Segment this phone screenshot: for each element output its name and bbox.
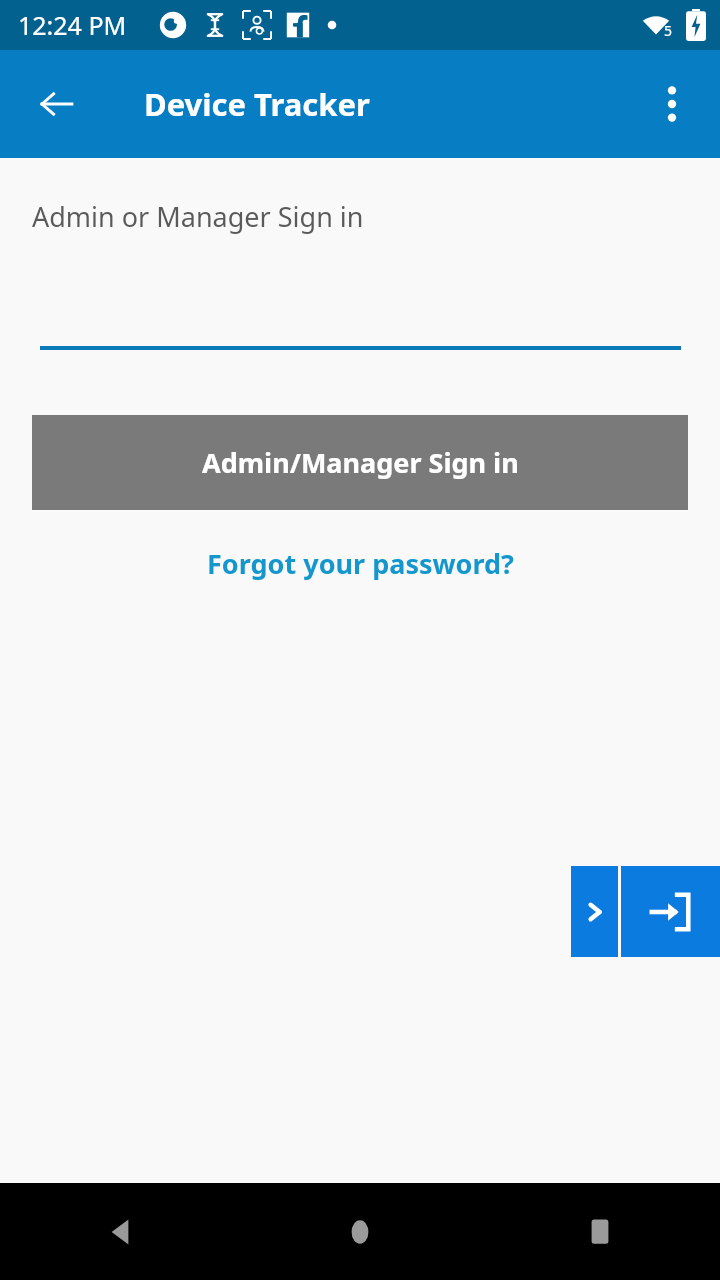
- button[interactable]: Admin/Manager Sign in: [32, 415, 688, 510]
- staticText: Forgot your password?: [207, 545, 514, 582]
- button[interactable]: Back: [0, 1183, 240, 1280]
- button[interactable]: More options: [644, 76, 700, 132]
- staticText: Admin or Manager Sign in: [32, 198, 364, 235]
- button[interactable]: Home: [240, 1183, 480, 1280]
- button[interactable]: Username field: [40, 278, 681, 350]
- button[interactable]: Password field: [40, 370, 681, 444]
- staticText: Admin/Manager Sign in: [202, 444, 519, 481]
- button[interactable]: Expand: [571, 866, 618, 957]
- button[interactable]: Sign in shortcut: [621, 866, 720, 957]
- staticText: 5: [664, 21, 673, 40]
- button[interactable]: Back: [25, 72, 89, 136]
- staticText: Device Tracker: [144, 83, 370, 125]
- staticText: 12:24 PM: [18, 8, 127, 42]
- button[interactable]: Forgot your password?: [0, 536, 720, 590]
- button[interactable]: Recent apps: [480, 1183, 720, 1280]
